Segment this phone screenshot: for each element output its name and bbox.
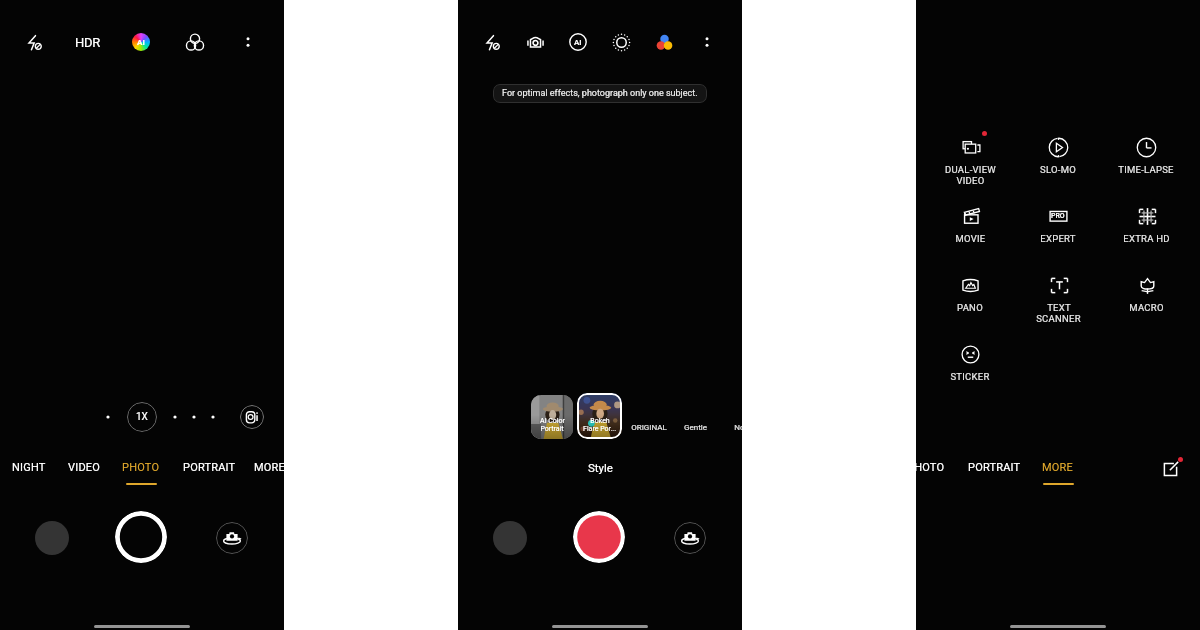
button[interactable]: More settings <box>233 27 263 57</box>
button[interactable]: Beauty <box>606 27 636 57</box>
button[interactable]: Flash off <box>19 27 49 57</box>
staticText: 1X <box>136 411 148 423</box>
button[interactable]: Flash off <box>477 27 507 57</box>
button[interactable]: TIME-LAPSE <box>1102 134 1190 190</box>
staticText: AI <box>574 38 582 47</box>
button[interactable]: Gallery <box>35 521 69 555</box>
button[interactable]: TEXT <box>1014 272 1102 328</box>
button[interactable]: Shutter <box>115 511 167 563</box>
staticText: SCANNER <box>1036 313 1081 324</box>
staticText: For optimal effects, photograph only one… <box>502 88 698 99</box>
button[interactable]: Gallery <box>493 521 527 555</box>
staticText: PHOTO <box>916 461 945 474</box>
staticText: TEXT <box>1047 302 1071 313</box>
button[interactable]: PRO <box>1014 203 1102 259</box>
button[interactable]: More settings <box>692 27 722 57</box>
button[interactable]: EXTRA HD <box>1102 203 1190 259</box>
button[interactable]: Filters <box>180 27 210 57</box>
staticText: Bokeh <box>590 417 610 425</box>
button[interactable]: Switch camera <box>674 522 706 554</box>
button[interactable]: PORTRAIT <box>172 461 246 491</box>
button[interactable]: STICKER <box>926 341 1014 397</box>
staticText: TIME-LAPSE <box>1118 164 1174 175</box>
staticText: MACRO <box>1129 302 1164 313</box>
staticText: Style <box>588 461 613 474</box>
staticText: PORTRAIT <box>968 461 1021 474</box>
button[interactable]: PHOTO <box>115 461 167 491</box>
staticText: PORTRAIT <box>183 461 236 474</box>
button[interactable]: NIGHT <box>3 461 55 491</box>
staticText: MORE <box>1042 461 1074 474</box>
button[interactable]: Switch camera <box>216 522 248 554</box>
button[interactable]: VIDEO <box>58 461 110 491</box>
staticText: EXPERT <box>1040 233 1076 244</box>
button[interactable]: SLO-MO <box>1014 134 1102 190</box>
staticText: Noc <box>734 423 742 432</box>
button[interactable]: 1X <box>127 402 157 432</box>
staticText: VIDEO <box>68 461 101 474</box>
button[interactable]: Shutter <box>573 511 625 563</box>
button[interactable]: PANO <box>926 272 1014 328</box>
staticText: AI Color <box>540 417 565 425</box>
button[interactable]: DUAL-VIEW <box>926 134 1014 190</box>
button[interactable]: MORE <box>1034 461 1082 491</box>
button[interactable]: MOVIE <box>926 203 1014 259</box>
button[interactable]: PHOTO <box>916 461 952 491</box>
staticText: Flare Por... <box>583 425 616 433</box>
button[interactable]: Stabilization <box>520 27 550 57</box>
staticText: HDR <box>75 35 100 50</box>
staticText: STICKER <box>950 371 990 382</box>
staticText: PRO <box>1051 212 1065 220</box>
button[interactable]: PORTRAIT <box>957 461 1031 491</box>
button[interactable]: AI scene detection <box>126 27 156 57</box>
staticText: NIGHT <box>12 461 46 474</box>
button[interactable]: MACRO <box>1102 272 1190 328</box>
button[interactable]: Edit modes <box>1156 455 1184 483</box>
button[interactable]: Bokeh <box>577 393 622 439</box>
staticText: VIDEO <box>956 175 985 186</box>
staticText: ORIGINAL <box>631 423 667 432</box>
staticText: Portrait <box>540 425 564 433</box>
staticText: DUAL-VIEW <box>945 164 996 175</box>
button[interactable]: Colour filters <box>649 27 679 57</box>
button[interactable]: AI scene detection <box>563 27 593 57</box>
staticText: MOVIE <box>955 233 986 244</box>
staticText: PHOTO <box>122 461 160 474</box>
staticText: MORE <box>254 461 284 474</box>
staticText: AI <box>137 38 145 47</box>
staticText: Gentle <box>684 423 707 432</box>
staticText: SLO-MO <box>1040 164 1076 175</box>
button[interactable]: MORE <box>246 461 284 491</box>
button[interactable]: AI Color <box>531 395 573 439</box>
button[interactable]: HDR <box>71 30 103 54</box>
button[interactable]: Smart capture <box>240 405 264 429</box>
staticText: EXTRA HD <box>1123 233 1170 244</box>
staticText: PANO <box>957 302 983 313</box>
